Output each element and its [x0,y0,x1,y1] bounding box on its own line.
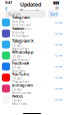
button[interactable]: Telegram X [2,39,62,50]
staticText: WhatsApp [12,49,34,55]
staticText: OPEN [55,32,62,35]
button[interactable]: Account [55,6,59,10]
staticText: OPEN [55,76,62,79]
button[interactable]: Telegram [2,17,62,28]
button[interactable]: Back [5,3,7,13]
button[interactable]: Teams [2,28,62,39]
staticText: ▮▮▮ [53,0,59,5]
staticText: 9:41 [5,0,12,5]
staticText: OPEN [55,21,62,24]
staticText: ‹ [5,3,7,13]
staticText: OPEN [55,87,62,90]
button[interactable]: Notes [2,94,62,105]
staticText: Notes [12,93,23,99]
staticText: Teams [12,25,24,31]
staticText: Instagram [12,82,33,88]
staticText: Minor fixes [12,102,27,106]
button[interactable]: Instagram [2,83,62,94]
staticText: OPEN [55,98,62,101]
staticText: Yesterday [12,31,24,34]
button[interactable]: WhatsApp [2,50,62,61]
staticText: OPEN [55,43,62,46]
staticText: 4d ago [12,66,22,69]
staticText: OPEN [55,65,62,68]
staticText: Telegram X [12,38,34,44]
staticText: Search [8,11,20,17]
staticText: YouTube [12,71,29,77]
staticText: Stability fixes [12,47,29,51]
staticText: 1w ago [12,99,22,102]
staticText: Performance improvements [12,34,31,41]
staticText: New features [12,58,29,62]
staticText: 5d ago [12,77,22,80]
staticText: 3d ago [12,55,22,58]
staticText: 2d ago [12,44,22,47]
staticText: 6d ago [12,88,22,91]
staticText: Facebook [12,60,29,66]
staticText: Stories update [12,91,32,95]
staticText: Telegram [12,14,30,20]
staticText: Bug fixes [12,69,25,73]
staticText: Yesterday [12,20,24,23]
staticText: Playback fixes [12,80,29,84]
staticText: OPEN [55,54,62,57]
staticText: Sort [50,11,57,17]
staticText: Updated Recently [20,1,42,15]
button[interactable]: Facebook [2,61,62,72]
staticText: Bug fixes and improvements [12,23,31,30]
button[interactable]: YouTube [2,72,62,83]
